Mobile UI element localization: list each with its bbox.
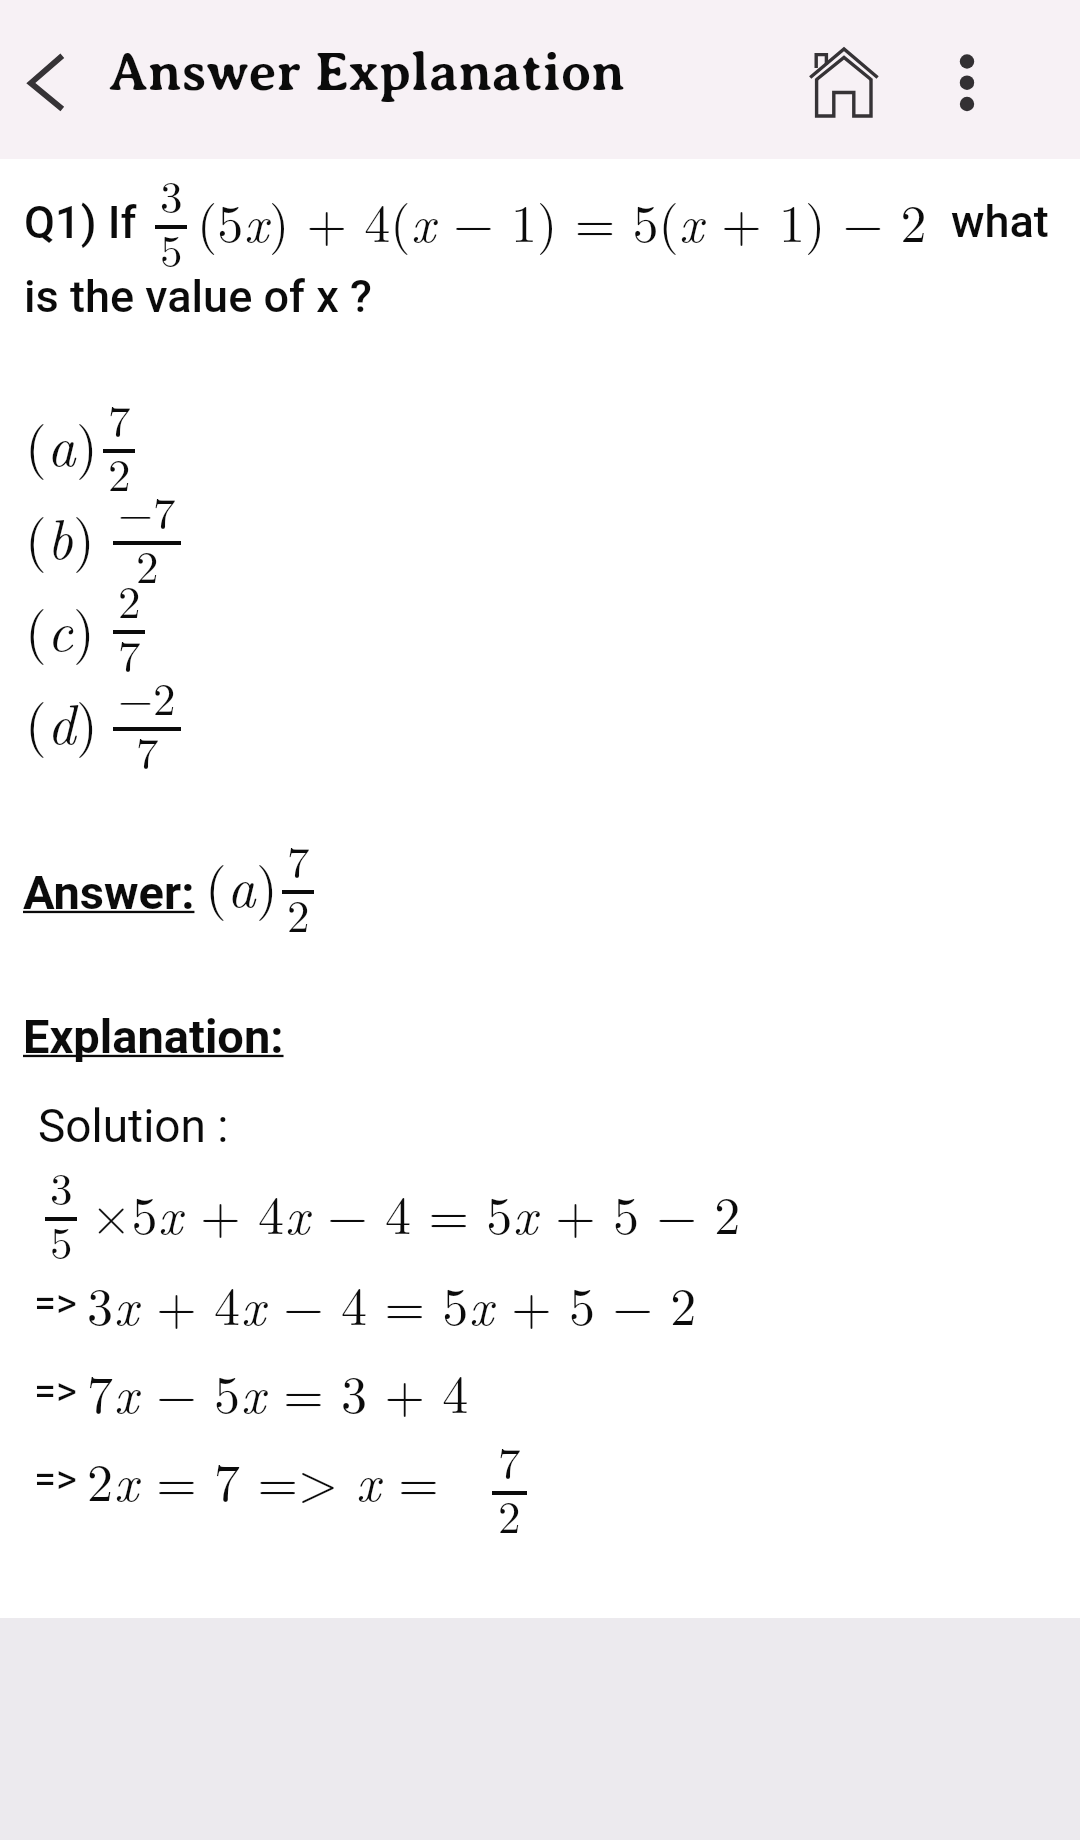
staticText: ( — [205, 844, 227, 923]
staticText: −2 — [118, 664, 176, 728]
button[interactable]: Option b, minus 7 over 2 — [14, 498, 214, 586]
staticText: − 4 = 5 — [266, 1266, 469, 1340]
button[interactable]: Home — [796, 30, 892, 126]
staticText: x — [285, 1175, 310, 1249]
staticText: a — [47, 403, 76, 482]
button[interactable]: More options — [920, 20, 1014, 114]
staticText: 7 — [108, 386, 131, 450]
staticText: d — [47, 681, 76, 760]
staticText: 7 — [498, 1428, 521, 1492]
staticText: = 7 => — [139, 1442, 356, 1516]
staticText: b — [47, 496, 73, 575]
staticText: −7 — [118, 478, 176, 542]
staticText: − 5 — [139, 1354, 241, 1428]
staticText: = 3 + 4 — [266, 1354, 469, 1428]
staticText: Explanation: — [23, 1009, 284, 1064]
staticText: x — [241, 1266, 266, 1340]
staticText: ×5 — [91, 1175, 158, 1249]
staticText: Answer: — [23, 865, 195, 920]
staticText: x — [469, 1266, 494, 1340]
staticText: 5 — [50, 1208, 73, 1272]
button[interactable]: Option d, minus 2 over 7 — [14, 683, 214, 771]
staticText: 2 — [498, 1482, 521, 1546]
staticText: Answer Explanation — [109, 42, 625, 103]
staticText: a — [227, 844, 256, 923]
staticText: what — [951, 195, 1049, 248]
staticText: 2 — [287, 881, 310, 945]
staticText: x — [241, 1354, 266, 1428]
staticText: 7 — [287, 827, 310, 891]
staticText: ) — [73, 588, 95, 667]
staticText: Q1) If — [24, 196, 137, 249]
staticText: x — [411, 183, 436, 257]
staticText: 3 — [160, 162, 183, 226]
staticText: x — [114, 1442, 139, 1516]
staticText: x — [513, 1175, 538, 1249]
button[interactable]: Option a, 7 over 2 — [14, 406, 214, 494]
staticText: ( — [25, 403, 47, 482]
staticText: = — [381, 1442, 439, 1516]
staticText: x — [158, 1175, 183, 1249]
staticText: 5 — [160, 216, 183, 280]
staticText: 3 — [87, 1266, 114, 1340]
staticText: 2 — [136, 532, 159, 596]
staticText: => — [34, 1368, 87, 1415]
staticText: c — [47, 588, 73, 667]
staticText: + 5 − 2 — [538, 1175, 741, 1249]
staticText: x — [356, 1442, 381, 1516]
staticText: ) — [256, 844, 278, 923]
staticText: 3 — [50, 1154, 73, 1218]
staticText: − 1) = 5( — [436, 183, 679, 257]
staticText: => — [34, 1280, 87, 1327]
staticText: + 5 − 2 — [494, 1266, 697, 1340]
staticText: (5 — [197, 183, 244, 257]
staticText: ) + 4( — [269, 183, 411, 257]
staticText: 2 — [108, 440, 131, 504]
staticText: ) — [76, 403, 98, 482]
staticText: is the value of x ? — [24, 270, 373, 323]
staticText: x — [114, 1354, 139, 1428]
staticText: 7 — [118, 621, 141, 685]
staticText: x — [679, 183, 704, 257]
staticText: + 1) − 2 — [704, 183, 927, 257]
staticText: 2 — [118, 567, 141, 631]
staticText: + 4 — [139, 1266, 241, 1340]
staticText: 7 — [87, 1354, 114, 1428]
staticText: => — [34, 1456, 87, 1503]
staticText: 2 — [87, 1442, 114, 1516]
button[interactable]: Option c, 2 over 7 — [14, 590, 214, 678]
staticText: ) — [76, 681, 98, 760]
staticText: x — [244, 183, 269, 257]
staticText: + 4 — [183, 1175, 285, 1249]
staticText: ( — [25, 681, 47, 760]
staticText: Solution : — [38, 1099, 229, 1153]
staticText: ( — [25, 588, 47, 667]
staticText: x — [114, 1266, 139, 1340]
staticText: 7 — [136, 718, 159, 782]
staticText: ( — [25, 496, 47, 575]
staticText: ) — [73, 496, 95, 575]
staticText: − 4 = 5 — [310, 1175, 513, 1249]
button[interactable]: Back — [0, 35, 92, 127]
